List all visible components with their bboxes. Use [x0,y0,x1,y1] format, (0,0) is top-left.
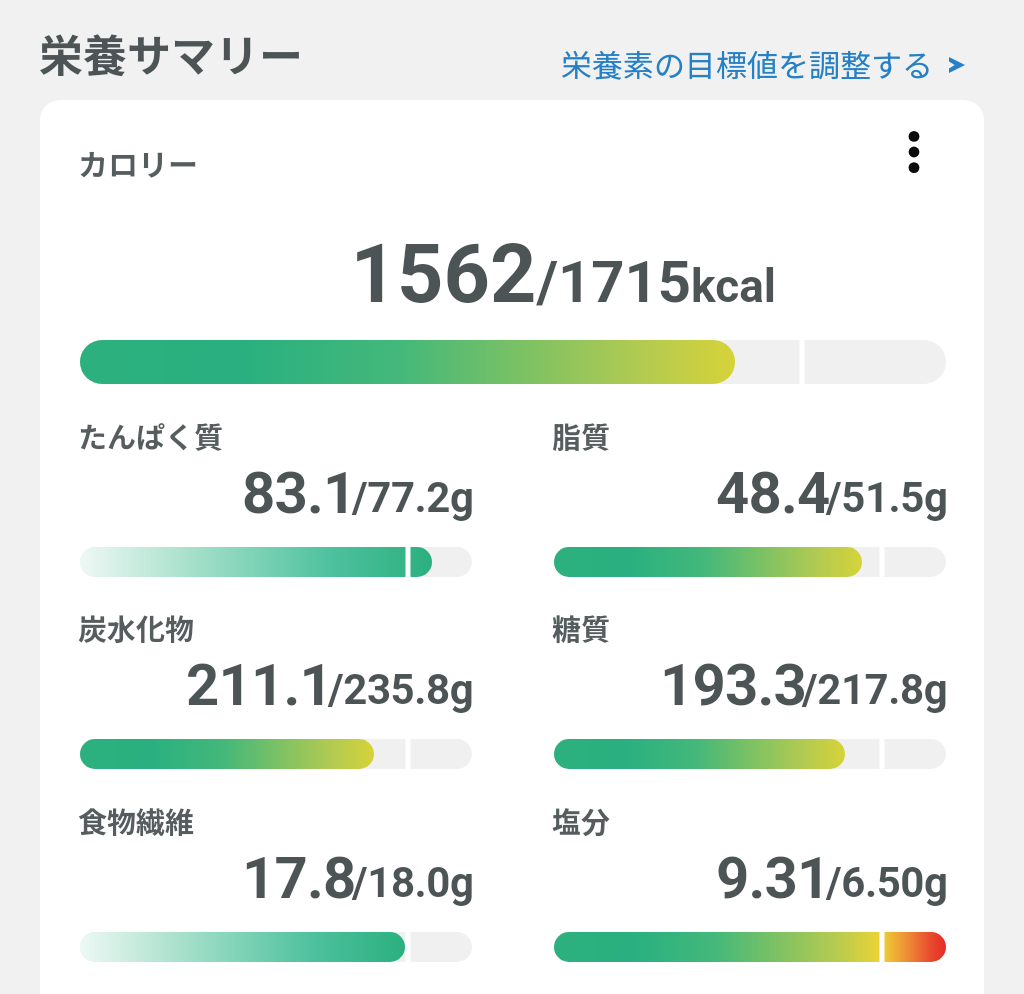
staticText: 栄養サマリー [39,21,303,85]
staticText: たんぱく質 [78,414,224,456]
staticText: 食物繊維 [78,799,195,841]
staticText: 9.31 [716,844,830,912]
staticText: /235.8g [328,665,474,714]
button[interactable]: 塩分 [554,808,946,968]
staticText: 17.8 [242,844,356,912]
button[interactable]: 脂質 [554,423,946,583]
staticText: 1562/1715kcal [40,227,776,322]
staticText: /51.5g [826,473,948,522]
button[interactable]: 糖質 [554,615,946,775]
staticText: 栄養素の目標値を調整する [561,41,933,86]
button[interactable]: たんぱく質 [80,423,472,583]
staticText: 脂質 [552,414,611,456]
staticText: /77.2g [352,473,474,522]
button[interactable]: 炭水化物 [80,615,472,775]
staticText: /6.50g [826,858,948,907]
staticText: 211.1 [186,651,332,719]
button[interactable]: 栄養素の目標値を調整する [561,41,965,86]
staticText: カロリー [78,141,198,184]
staticText: 193.3 [660,651,806,719]
button[interactable]: More options [886,124,942,180]
staticText: 塩分 [552,799,611,841]
staticText: 炭水化物 [78,606,195,648]
staticText: /217.8g [802,665,948,714]
button[interactable]: 食物繊維 [80,808,472,968]
staticText: 83.1 [242,459,356,527]
staticText: /18.0g [352,858,474,907]
staticText: 48.4 [716,459,830,527]
staticText: 糖質 [552,606,611,648]
